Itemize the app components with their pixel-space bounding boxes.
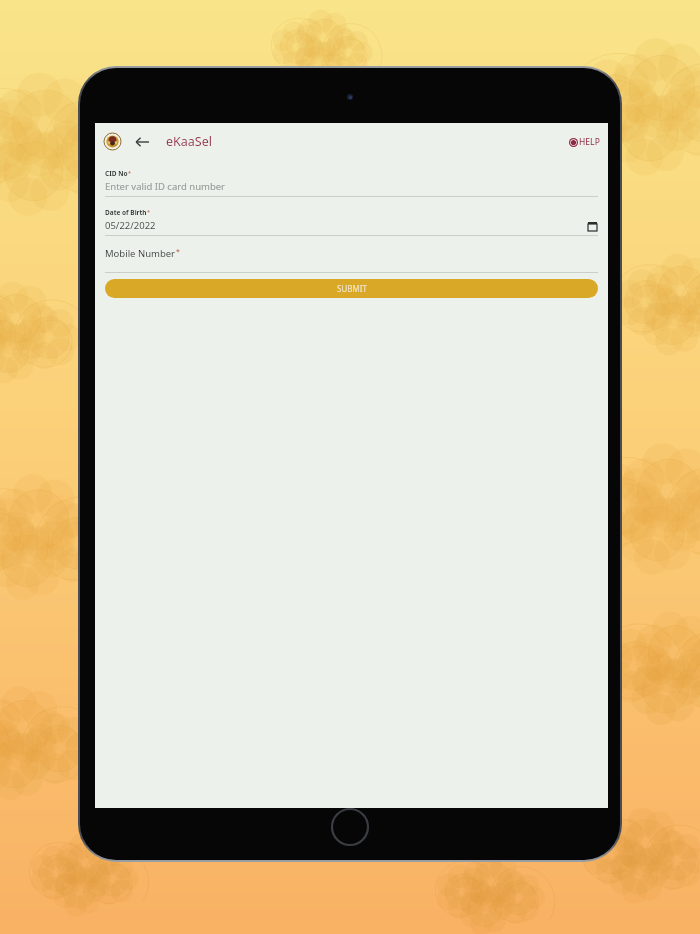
staticText: * xyxy=(128,169,132,176)
staticText: CID No xyxy=(105,169,128,178)
button[interactable]: CID No xyxy=(105,169,598,197)
button[interactable]: HELP xyxy=(569,136,600,148)
staticText: 05/22/2022 xyxy=(105,219,586,232)
button[interactable]: Home xyxy=(331,808,369,846)
button[interactable]: Pick date xyxy=(586,220,598,232)
staticText: HELP xyxy=(579,136,600,148)
button[interactable]: SUBMIT xyxy=(105,279,598,298)
button[interactable]: National emblem xyxy=(104,133,121,150)
button[interactable]: Date of Birth xyxy=(105,208,598,236)
staticText: Mobile Number xyxy=(105,247,176,260)
button[interactable]: Mobile Number xyxy=(105,247,598,273)
staticText: SUBMIT xyxy=(337,283,367,294)
staticText: Date of Birth xyxy=(105,208,147,217)
button[interactable]: Back xyxy=(130,130,154,154)
staticText: * xyxy=(176,247,180,257)
staticText: * xyxy=(147,208,151,215)
staticText: eKaaSel xyxy=(166,133,212,150)
staticText: Enter valid ID card number xyxy=(105,180,598,193)
